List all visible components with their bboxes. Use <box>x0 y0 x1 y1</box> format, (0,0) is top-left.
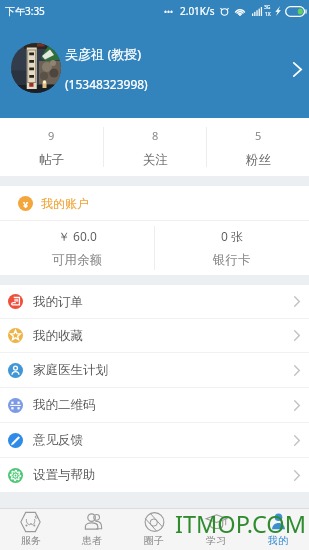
button[interactable]: 设置与帮助 <box>0 458 309 492</box>
staticText: 意见反馈 <box>33 432 83 448</box>
button[interactable]: 我的收藏 <box>0 319 309 352</box>
staticText: 我的收藏 <box>33 328 83 344</box>
staticText: (15348323998) <box>65 76 148 92</box>
staticText: 我的 <box>268 534 288 547</box>
staticText: 学习 <box>206 534 226 547</box>
staticText: 0 张 <box>221 228 243 244</box>
button[interactable]: 圈子 <box>123 509 185 550</box>
staticText: 圈子 <box>144 534 164 547</box>
staticText: 可用余额 <box>52 252 102 268</box>
staticText: 银行卡 <box>213 252 251 268</box>
button[interactable]: 5 <box>207 118 309 176</box>
button[interactable]: ¥ <box>0 186 309 220</box>
button[interactable]: 0 张 <box>155 221 309 275</box>
staticText: 关注 <box>143 152 168 168</box>
staticText: 粉丝 <box>246 152 271 168</box>
staticText: 服务 <box>21 534 41 547</box>
staticText: 家庭医生计划 <box>33 362 108 378</box>
staticText: 设置与帮助 <box>33 467 96 483</box>
button[interactable]: 我的订单 <box>0 285 309 318</box>
staticText: 我的订单 <box>33 294 83 310</box>
button[interactable]: ￥ 60.0 <box>0 221 154 275</box>
staticText: 1X <box>265 11 271 18</box>
button[interactable]: 家庭医生计划 <box>0 353 309 387</box>
staticText: 吴彦祖 (教授) <box>65 45 142 63</box>
button[interactable]: 学习 <box>185 509 247 550</box>
staticText: ••• <box>164 6 174 17</box>
staticText: 2.01K/s <box>180 4 215 18</box>
staticText: ¥ <box>23 198 29 210</box>
staticText: 3G <box>264 4 271 11</box>
button[interactable]: 意见反馈 <box>0 423 309 457</box>
button[interactable]: 我的二维码 <box>0 388 309 422</box>
button[interactable]: 吴彦祖 (教授) <box>0 21 309 118</box>
button[interactable]: 8 <box>104 118 206 176</box>
staticText: 下午3:35 <box>5 4 45 18</box>
staticText: ￥ 60.0 <box>58 228 97 244</box>
staticText: 8 <box>152 128 159 143</box>
staticText: 5 <box>255 128 262 143</box>
button[interactable]: 我的 <box>247 509 309 550</box>
staticText: ITMOP.COM <box>175 508 307 540</box>
button[interactable]: 服务 <box>0 509 61 550</box>
staticText: 我的账户 <box>41 196 89 211</box>
staticText: 9 <box>48 128 55 143</box>
staticText: 我的二维码 <box>33 397 96 413</box>
staticText: 患者 <box>82 534 102 547</box>
button[interactable]: 9 <box>0 118 103 176</box>
staticText: 帖子 <box>39 152 64 168</box>
button[interactable]: 患者 <box>61 509 123 550</box>
other: 查看个人资料 <box>289 59 305 79</box>
